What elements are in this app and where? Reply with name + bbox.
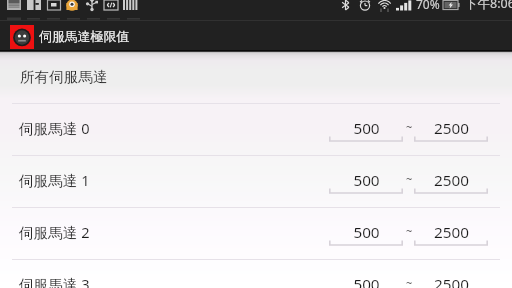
staticText: 2500	[434, 274, 469, 288]
staticText: ~	[406, 223, 413, 238]
staticText: ~	[406, 119, 413, 134]
button[interactable]: 500	[329, 219, 403, 249]
staticText: 伺服馬達 2	[19, 222, 90, 242]
button[interactable]: 伺服馬達 3	[0, 260, 512, 288]
staticText: 500	[353, 274, 380, 288]
button[interactable]: 伺服馬達 1	[0, 156, 512, 207]
staticText: ~	[406, 171, 413, 186]
button[interactable]: App icon	[10, 21, 512, 52]
staticText: 下午8:06	[465, 0, 512, 12]
button[interactable]: 500	[329, 167, 403, 197]
button[interactable]: 500	[329, 115, 403, 145]
staticText: 500	[353, 222, 380, 243]
staticText: 500	[353, 170, 380, 191]
staticText: 2500	[434, 222, 469, 243]
staticText: 70%	[416, 0, 440, 12]
staticText: 2500	[434, 170, 469, 191]
staticText: 所有伺服馬達	[20, 68, 108, 86]
staticText: 伺服馬達極限值	[39, 29, 130, 45]
other: App icon	[10, 25, 34, 49]
button[interactable]: 2500	[414, 115, 488, 145]
staticText: 500	[353, 118, 380, 139]
staticText: ~	[406, 275, 413, 288]
button[interactable]: 2500	[414, 271, 488, 288]
staticText: 伺服馬達 1	[19, 170, 90, 190]
staticText: 伺服馬達 3	[19, 274, 90, 288]
staticText: 伺服馬達 0	[19, 118, 90, 138]
button[interactable]: 伺服馬達 0	[0, 104, 512, 155]
button[interactable]: 所有伺服馬達	[0, 52, 512, 104]
button[interactable]: 2500	[414, 167, 488, 197]
staticText: 2500	[434, 118, 469, 139]
button[interactable]: 500	[329, 271, 403, 288]
button[interactable]: 伺服馬達 2	[0, 208, 512, 259]
button[interactable]: 2500	[414, 219, 488, 249]
